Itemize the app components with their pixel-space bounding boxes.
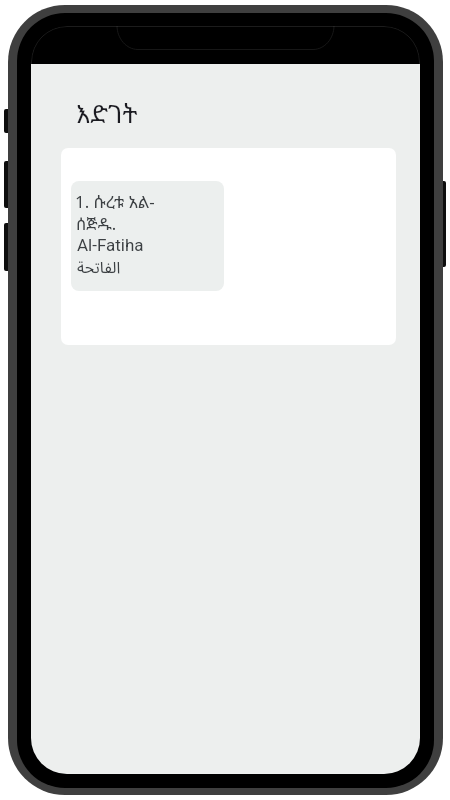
button[interactable]: Volume down (4, 223, 10, 271)
staticText: 1. ሱረቱ አል- (75, 190, 155, 213)
button[interactable]: Volume up (4, 161, 10, 208)
staticText: الفاتحة (77, 251, 121, 285)
button[interactable]: Silent switch (4, 109, 10, 133)
staticText: ሰጅዱ. (76, 212, 117, 235)
button[interactable]: Power (440, 181, 446, 267)
staticText: Al-Fatiha (77, 235, 144, 255)
button[interactable]: 1. ሱረቱ አል- (71, 181, 224, 291)
staticText: እድገት (76, 96, 138, 130)
